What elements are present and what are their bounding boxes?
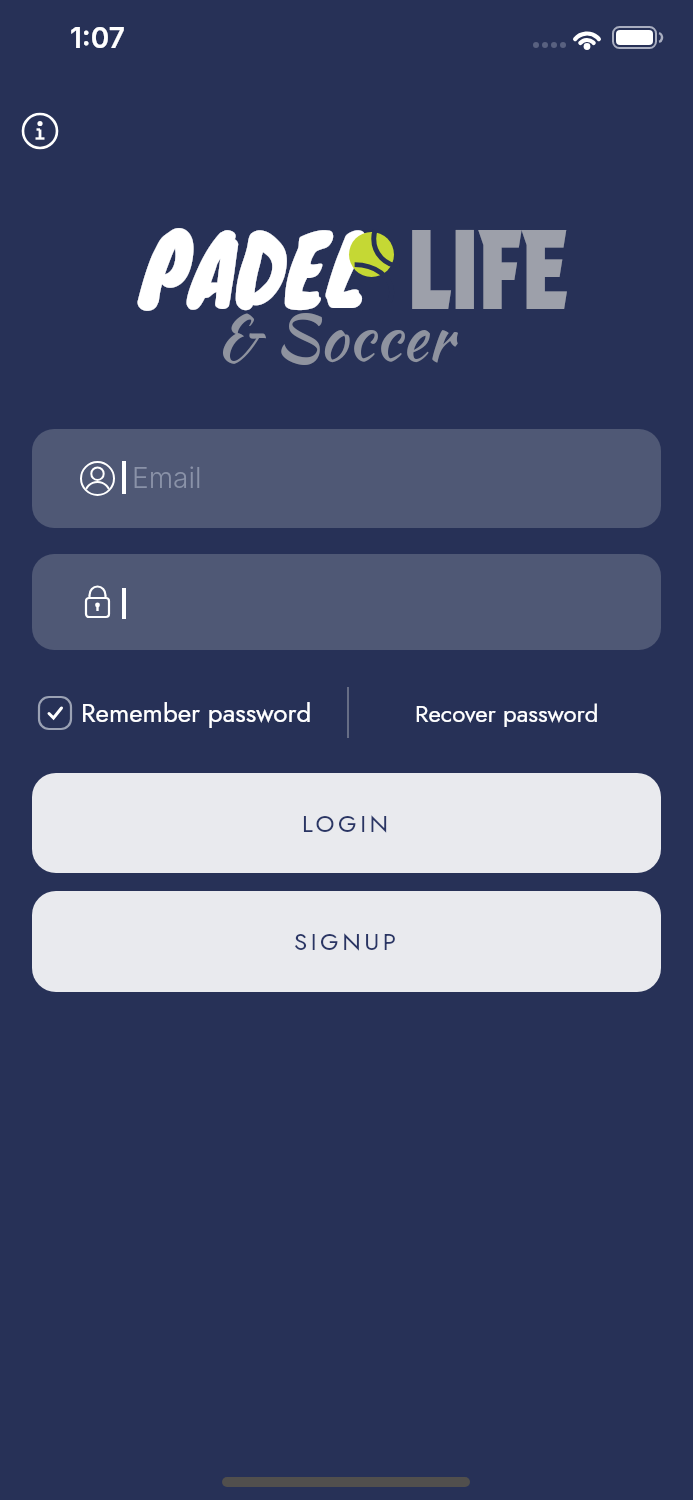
button[interactable] (32, 554, 661, 650)
button[interactable]: Remember password (38, 688, 312, 738)
button[interactable]: Email (32, 429, 661, 528)
staticText: LOGIN (302, 806, 392, 841)
staticText: Recover password (415, 696, 599, 731)
staticText: SIGNUP (294, 924, 400, 959)
button[interactable]: SIGNUP (32, 891, 661, 992)
staticText: Email (132, 461, 202, 495)
staticText: 1:07 (70, 21, 125, 55)
staticText: LIFE (408, 203, 569, 335)
button[interactable] (21, 112, 59, 150)
button[interactable]: Recover password (352, 680, 662, 746)
button[interactable]: LOGIN (32, 773, 661, 873)
staticText: Remember password (81, 694, 312, 732)
staticText: & Soccer (217, 293, 454, 383)
staticText: PADEL (140, 193, 365, 339)
